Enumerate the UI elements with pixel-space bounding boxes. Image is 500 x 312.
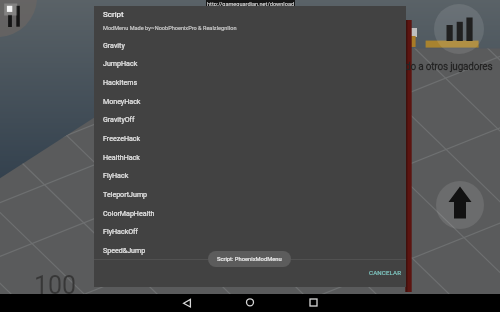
button[interactable]: JumpHack — [94, 53, 406, 72]
staticText: do a otros jugadores — [405, 61, 493, 73]
staticText: http://gameguardian.net/download — [207, 1, 295, 8]
button[interactable]: FlyHack — [94, 165, 406, 184]
button[interactable]: Speed&Jump — [94, 240, 406, 259]
button[interactable]: HackItems — [94, 72, 406, 91]
staticText: HackItems — [103, 78, 138, 86]
button[interactable]: Back — [167, 294, 207, 312]
button[interactable]: Jump — [436, 181, 484, 229]
button[interactable]: Recent apps — [293, 294, 333, 312]
staticText: FlyHackOff — [103, 227, 139, 235]
button[interactable]: FlyHackOff — [94, 221, 406, 240]
staticText: Gravity — [103, 41, 125, 49]
button[interactable]: Home — [230, 294, 270, 312]
button[interactable]: Leaderboard — [434, 4, 484, 54]
staticText: Script: PhoenixModMenu — [217, 256, 282, 263]
button[interactable]: Score icon — [3, 3, 25, 25]
staticText: 100 — [34, 271, 77, 300]
button[interactable]: MoneyHack — [94, 91, 406, 110]
staticText: MoneyHack — [103, 97, 141, 105]
staticText: Speed&Jump — [103, 246, 146, 254]
button[interactable]: Stats panel — [0, 0, 37, 37]
button[interactable]: FreezeHack — [94, 128, 406, 147]
button[interactable]: GravityOff — [94, 109, 406, 128]
staticText: ColorMapHealth — [103, 209, 155, 217]
staticText: JumpHack — [103, 59, 138, 67]
button[interactable]: CANCELAR — [362, 264, 409, 280]
button[interactable]: HealthHack — [94, 147, 406, 166]
staticText: FreezeHack — [103, 134, 141, 142]
staticText: TeleportJump — [103, 190, 148, 198]
staticText: CANCELAR — [369, 269, 402, 276]
staticText: GravityOff — [103, 115, 135, 123]
staticText: FlyHack — [103, 171, 129, 179]
staticText: HealthHack — [103, 153, 140, 161]
button[interactable]: Gravity — [94, 35, 406, 54]
button[interactable]: ColorMapHealth — [94, 203, 406, 222]
button[interactable]: TeleportJump — [94, 184, 406, 203]
staticText: ModMenu Made by~NoobPhoenixPro & RealzIe… — [103, 25, 237, 32]
staticText: Script — [103, 10, 124, 19]
